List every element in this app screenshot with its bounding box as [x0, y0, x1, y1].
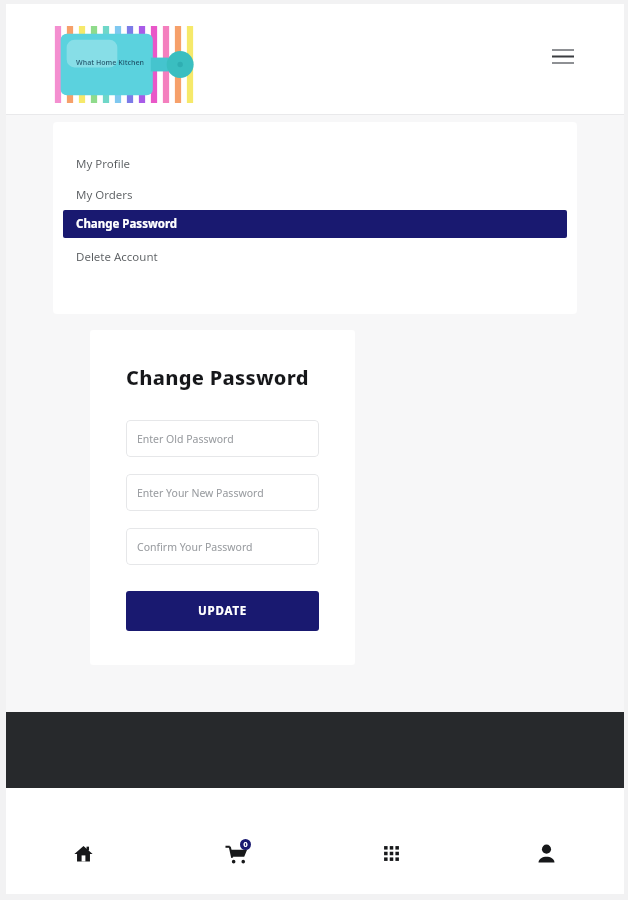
staticText: My Orders	[76, 187, 133, 203]
button[interactable]: Account	[469, 832, 624, 874]
staticText: Change Password	[76, 216, 178, 232]
staticText: UPDATE	[198, 603, 248, 619]
staticText: What Home Kitchen	[76, 58, 145, 68]
button[interactable]: Home	[6, 832, 160, 874]
button[interactable]: Enter Old Password	[126, 420, 319, 457]
button[interactable]: Confirm Your Password	[126, 528, 319, 565]
staticText: Enter Your New Password	[137, 486, 264, 500]
button[interactable]: Change Password	[63, 210, 567, 238]
staticText: My Profile	[76, 156, 131, 172]
button[interactable]: Delete Account	[53, 241, 577, 272]
staticText: Delete Account	[76, 249, 158, 265]
button[interactable]: Categories	[314, 832, 469, 874]
button[interactable]: UPDATE	[126, 591, 319, 631]
staticText: Change Password	[126, 364, 309, 391]
button[interactable]: My Profile	[53, 148, 577, 179]
staticText: Enter Old Password	[137, 432, 234, 446]
button[interactable]: My Orders	[53, 179, 577, 210]
button[interactable]: What Home Kitchen logo	[52, 26, 196, 103]
staticText: 0	[243, 840, 248, 850]
staticText: Confirm Your Password	[137, 540, 253, 554]
button[interactable]: Enter Your New Password	[126, 474, 319, 511]
button[interactable]: Menu	[546, 39, 580, 73]
button[interactable]: Cart	[160, 832, 314, 874]
